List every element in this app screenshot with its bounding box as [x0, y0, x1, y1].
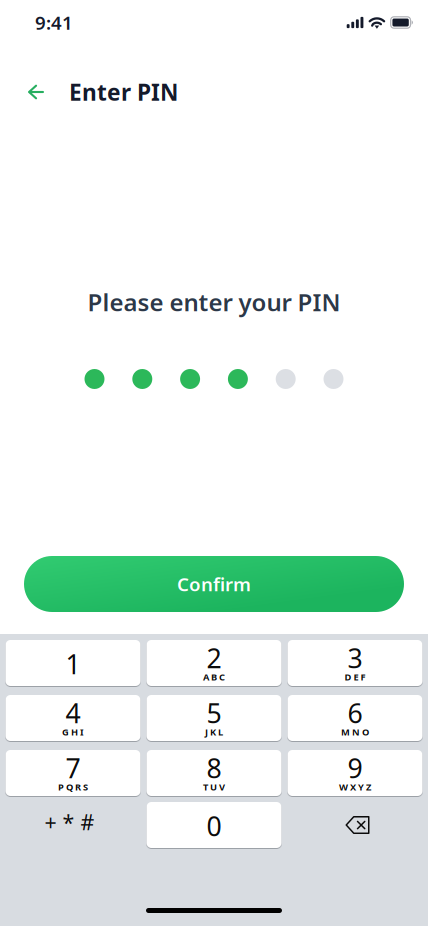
staticText: 2	[206, 640, 221, 676]
staticText: Please enter your PIN	[87, 286, 340, 318]
staticText: 8	[206, 750, 221, 786]
button[interactable]: 6	[287, 695, 422, 741]
staticText: T U V	[203, 781, 225, 793]
button[interactable]: 5	[146, 695, 281, 741]
staticText: G H I	[62, 726, 84, 738]
staticText: 0	[206, 808, 221, 844]
button[interactable]: 3	[287, 640, 422, 686]
staticText: + * #	[44, 808, 94, 836]
button[interactable]: 7	[5, 750, 140, 796]
button[interactable]: Delete	[287, 802, 422, 848]
button[interactable]: 2	[146, 640, 281, 686]
staticText: M N O	[341, 726, 369, 738]
staticText: 7	[65, 750, 80, 786]
button[interactable]: Confirm	[24, 556, 404, 612]
staticText: Enter PIN	[69, 77, 178, 107]
staticText: 3	[347, 640, 362, 676]
staticText: 9	[347, 750, 362, 786]
staticText: 1	[65, 646, 80, 682]
button[interactable]: Back	[14, 70, 58, 114]
staticText: Confirm	[177, 572, 251, 596]
button[interactable]: 4	[5, 695, 140, 741]
button[interactable]: 0	[146, 802, 281, 848]
button[interactable]: 1	[5, 640, 140, 686]
button[interactable]: Symbols	[5, 802, 140, 848]
button[interactable]: 8	[146, 750, 281, 796]
staticText: 6	[347, 695, 362, 731]
staticText: P Q R S	[58, 781, 88, 793]
staticText: W X Y Z	[339, 781, 371, 793]
staticText: D E F	[344, 671, 365, 683]
staticText: J K L	[205, 726, 223, 738]
button[interactable]: 9	[287, 750, 422, 796]
staticText: 9:41	[35, 10, 73, 35]
staticText: 4	[65, 695, 80, 731]
staticText: 5	[206, 695, 221, 731]
staticText: A B C	[203, 671, 225, 683]
